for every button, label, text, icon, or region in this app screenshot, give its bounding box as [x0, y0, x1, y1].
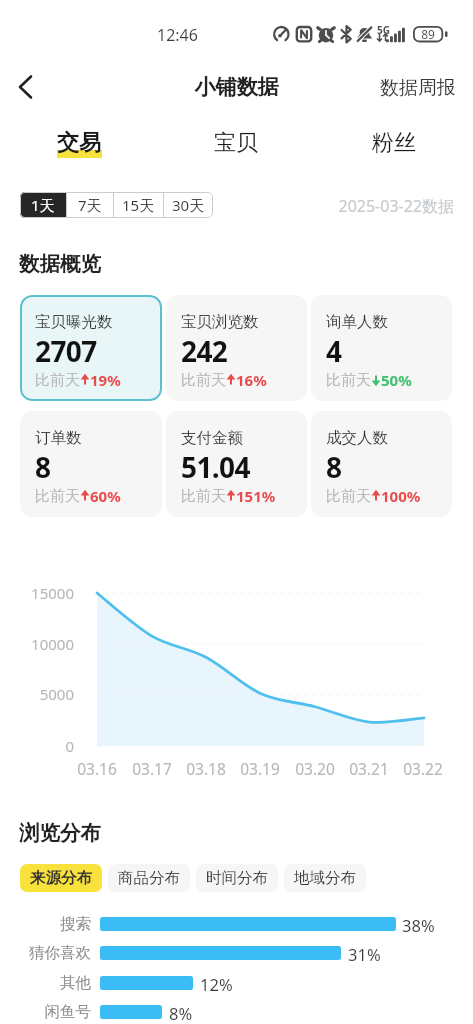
staticText: 粉丝 — [372, 129, 416, 157]
staticText: 比前天 — [35, 371, 80, 390]
staticText: 比前天 — [326, 371, 371, 390]
staticText: 60% — [90, 486, 121, 506]
staticText: 交易 — [57, 129, 101, 157]
button[interactable]: 询单人数 — [311, 295, 452, 401]
staticText: 12:46 — [157, 24, 198, 46]
staticText: 商品分布 — [118, 868, 180, 888]
staticText: 比前天 — [35, 487, 80, 506]
button[interactable]: 7天 — [67, 192, 113, 218]
button[interactable]: 来源分布 — [20, 864, 102, 892]
staticText: 10000 — [0, 634, 74, 654]
staticText: 151% — [236, 486, 276, 506]
staticText: 询单人数 — [326, 312, 388, 332]
button[interactable]: 时间分布 — [196, 864, 278, 892]
staticText: 31% — [348, 943, 381, 965]
staticText: 1天 — [31, 195, 55, 215]
button[interactable]: 1天 — [20, 192, 66, 218]
staticText: 8% — [169, 1002, 193, 1024]
staticText: 宝贝曝光数 — [35, 312, 113, 332]
staticText: 搜索 — [0, 914, 91, 934]
staticText: 03.17 — [122, 758, 182, 779]
staticText: 比前天 — [181, 487, 226, 506]
staticText: 89 — [413, 26, 443, 42]
staticText: 03.18 — [176, 758, 236, 779]
staticText: 100% — [381, 486, 421, 506]
staticText: 时间分布 — [206, 868, 268, 888]
button[interactable]: 数据周报 — [372, 68, 464, 108]
staticText: 数据周报 — [380, 76, 456, 100]
staticText: 19% — [90, 370, 121, 390]
staticText: 0 — [0, 736, 74, 756]
button[interactable]: 宝贝 — [157, 120, 315, 166]
button[interactable]: 15天 — [114, 192, 163, 218]
staticText: 浏览分布 — [19, 820, 101, 846]
staticText: 38% — [402, 914, 435, 936]
button[interactable]: 30天 — [164, 192, 213, 218]
staticText: 30天 — [172, 195, 205, 215]
staticText: 宝贝 — [214, 129, 258, 157]
button[interactable]: 交易 — [0, 120, 157, 166]
staticText: 8 — [326, 448, 342, 486]
button[interactable]: 成交人数 — [311, 411, 452, 517]
staticText: 数据概览 — [19, 251, 101, 277]
staticText: 15000 — [0, 583, 74, 603]
staticText: 03.19 — [230, 758, 290, 779]
staticText: 宝贝浏览数 — [181, 312, 259, 332]
staticText: 16% — [236, 370, 267, 390]
staticText: 猜你喜欢 — [0, 943, 91, 963]
staticText: 闲鱼号 — [0, 1002, 91, 1022]
staticText: 支付金额 — [181, 428, 243, 448]
staticText: 12% — [200, 973, 233, 995]
staticText: 2707 — [35, 332, 97, 370]
staticText: 其他 — [0, 973, 91, 993]
staticText: 成交人数 — [326, 428, 388, 448]
staticText: 15天 — [122, 195, 155, 215]
staticText: 5000 — [0, 684, 74, 704]
staticText: 5G — [377, 23, 390, 37]
staticText: 8 — [35, 448, 51, 486]
staticText: 03.20 — [285, 758, 345, 779]
staticText: 50% — [381, 370, 412, 390]
button[interactable]: 地域分布 — [284, 864, 366, 892]
staticText: 地域分布 — [294, 868, 356, 888]
staticText: 来源分布 — [30, 868, 92, 888]
staticText: 订单数 — [35, 428, 82, 448]
button[interactable]: 支付金额 — [166, 411, 307, 517]
button[interactable]: 宝贝浏览数 — [166, 295, 307, 401]
staticText: 03.22 — [393, 758, 453, 779]
staticText: 2025-03-22数据 — [0, 195, 454, 217]
staticText: 242 — [181, 332, 228, 370]
staticText: 03.21 — [339, 758, 399, 779]
staticText: 小铺数据 — [0, 74, 473, 100]
button[interactable]: 订单数 — [20, 411, 162, 517]
button[interactable]: Back — [4, 64, 50, 110]
button[interactable]: 宝贝曝光数 — [20, 295, 162, 401]
button[interactable]: 粉丝 — [315, 120, 473, 166]
staticText: 4 — [326, 332, 342, 370]
staticText: 51.04 — [181, 448, 250, 486]
staticText: 比前天 — [326, 487, 371, 506]
staticText: 7天 — [78, 195, 102, 215]
button[interactable]: 商品分布 — [108, 864, 190, 892]
staticText: 03.16 — [67, 758, 127, 779]
staticText: 比前天 — [181, 371, 226, 390]
